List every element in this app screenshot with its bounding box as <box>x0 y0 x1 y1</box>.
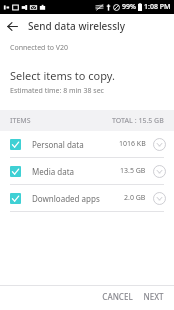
staticText: 1:08 PM <box>144 2 171 12</box>
staticText: 2.0 GB <box>124 193 146 203</box>
staticText: Send data wirelessly <box>28 19 126 33</box>
button[interactable]: CANCEL <box>95 287 140 306</box>
staticText: NEXT <box>143 291 164 302</box>
staticText: Select items to copy. <box>10 68 115 83</box>
button[interactable]: Expand Media data <box>152 164 166 178</box>
staticText: Downloaded apps <box>32 193 100 204</box>
button[interactable]: Downloaded apps <box>0 185 174 211</box>
staticText: TOTAL : 15.5 GB <box>112 116 164 126</box>
staticText: 1016 KB <box>119 139 146 149</box>
button[interactable]: Back <box>0 14 24 38</box>
staticText: 13.5 GB <box>120 166 146 176</box>
staticText: CANCEL <box>102 291 133 302</box>
staticText: 99% <box>122 2 136 12</box>
staticText: Personal data <box>32 139 84 150</box>
button[interactable]: NEXT <box>140 287 174 306</box>
staticText: Estimated time: 8 min 38 sec <box>10 86 104 96</box>
button[interactable]: Expand Downloaded apps <box>152 191 166 205</box>
button[interactable]: Media data <box>0 158 174 184</box>
button[interactable]: Expand Personal data <box>152 137 166 151</box>
staticText: ITEMS <box>10 116 31 126</box>
staticText: Connected to V20 <box>10 43 69 53</box>
button[interactable]: Personal data <box>0 131 174 157</box>
staticText: Media data <box>32 166 75 177</box>
